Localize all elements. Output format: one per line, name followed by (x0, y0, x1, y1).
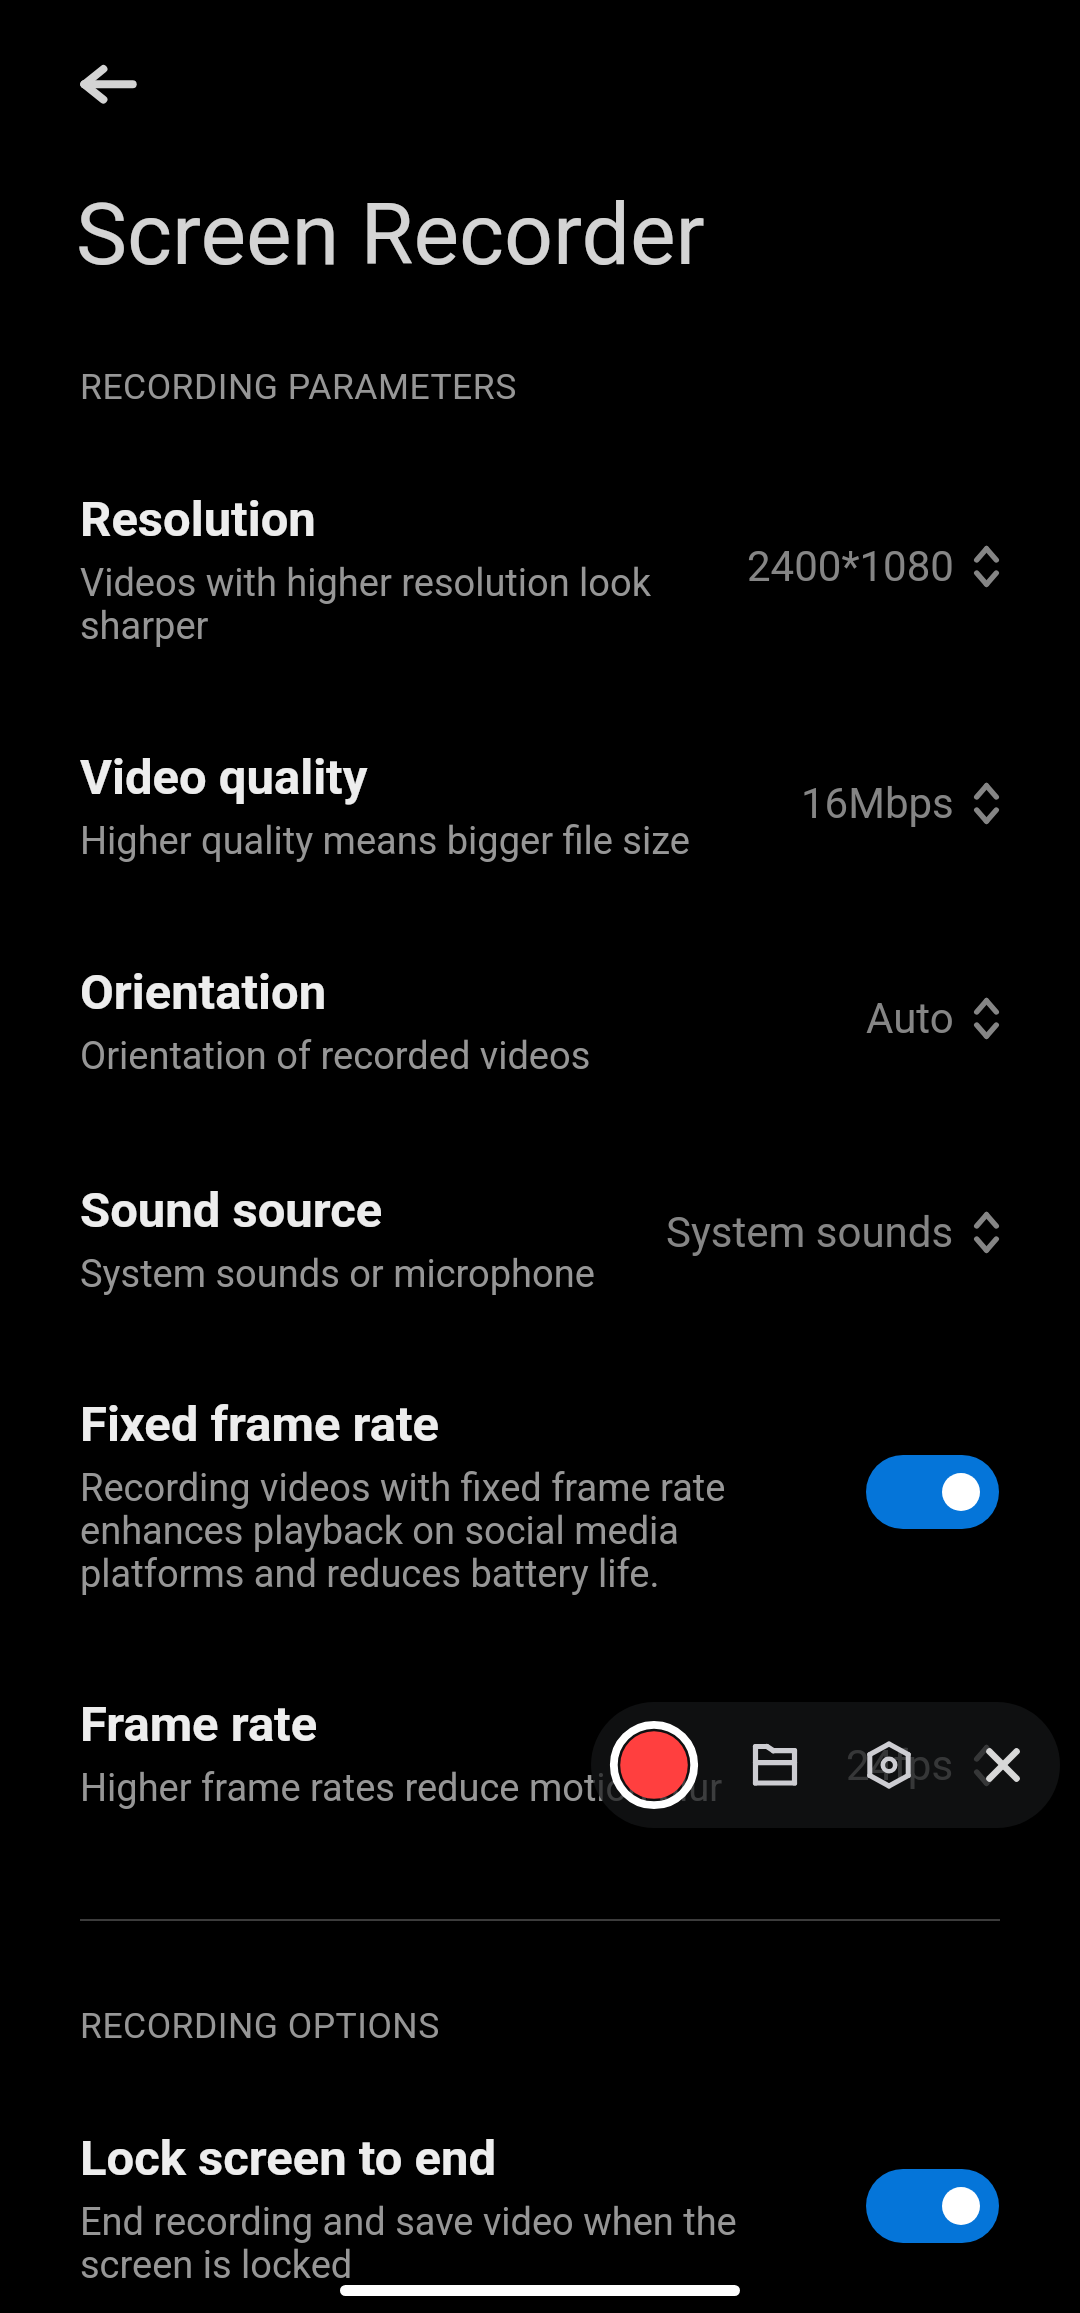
staticText: System sounds or microphone (80, 1253, 595, 1296)
button[interactable]: Settings (863, 1739, 915, 1791)
button[interactable]: Lock screen to end toggle, on (866, 2169, 999, 2243)
staticText: 2400*1080 (747, 542, 954, 591)
button[interactable]: Sound source (0, 1148, 1080, 1298)
staticText: End recording and save video when the sc… (80, 2201, 760, 2287)
staticText: Orientation of recorded videos (80, 1035, 591, 1078)
button[interactable]: Fixed frame rate toggle, on (866, 1455, 999, 1529)
staticText: Videos with higher resolution look sharp… (80, 562, 680, 648)
staticText: Fixed frame rate (80, 1396, 439, 1453)
staticText: Video quality (80, 749, 368, 806)
button[interactable]: Frame rate (0, 1662, 1080, 1822)
staticText: Screen Recorder (76, 184, 705, 285)
staticText: Frame rate (80, 1696, 318, 1753)
button[interactable]: Back (44, 48, 156, 120)
staticText: System sounds (666, 1208, 954, 1257)
button[interactable]: Record (602, 1713, 706, 1817)
button[interactable]: Fixed frame rate (0, 1362, 1080, 1602)
button[interactable]: Gallery (747, 1738, 803, 1790)
staticText: Higher quality means bigger file size (80, 820, 690, 863)
staticText: Sound source (80, 1182, 383, 1239)
staticText: Lock screen to end (80, 2130, 497, 2187)
button[interactable]: Close (980, 1742, 1026, 1788)
button[interactable]: Orientation (0, 930, 1080, 1080)
staticText: 16Mbps (801, 779, 954, 828)
button[interactable]: Lock screen to end (0, 2096, 1080, 2276)
button[interactable]: Resolution (0, 457, 1080, 637)
staticText: RECORDING PARAMETERS (80, 366, 517, 408)
button[interactable]: Video quality (0, 715, 1080, 865)
staticText: Recording videos with fixed frame rate e… (80, 1467, 760, 1596)
staticText: Auto (866, 994, 954, 1043)
staticText: Resolution (80, 491, 316, 548)
staticText: Higher frame rates reduce motion blur (80, 1767, 723, 1810)
staticText: RECORDING OPTIONS (80, 2005, 440, 2047)
staticText: Orientation (80, 964, 327, 1021)
staticText: 24fps (846, 1741, 954, 1790)
